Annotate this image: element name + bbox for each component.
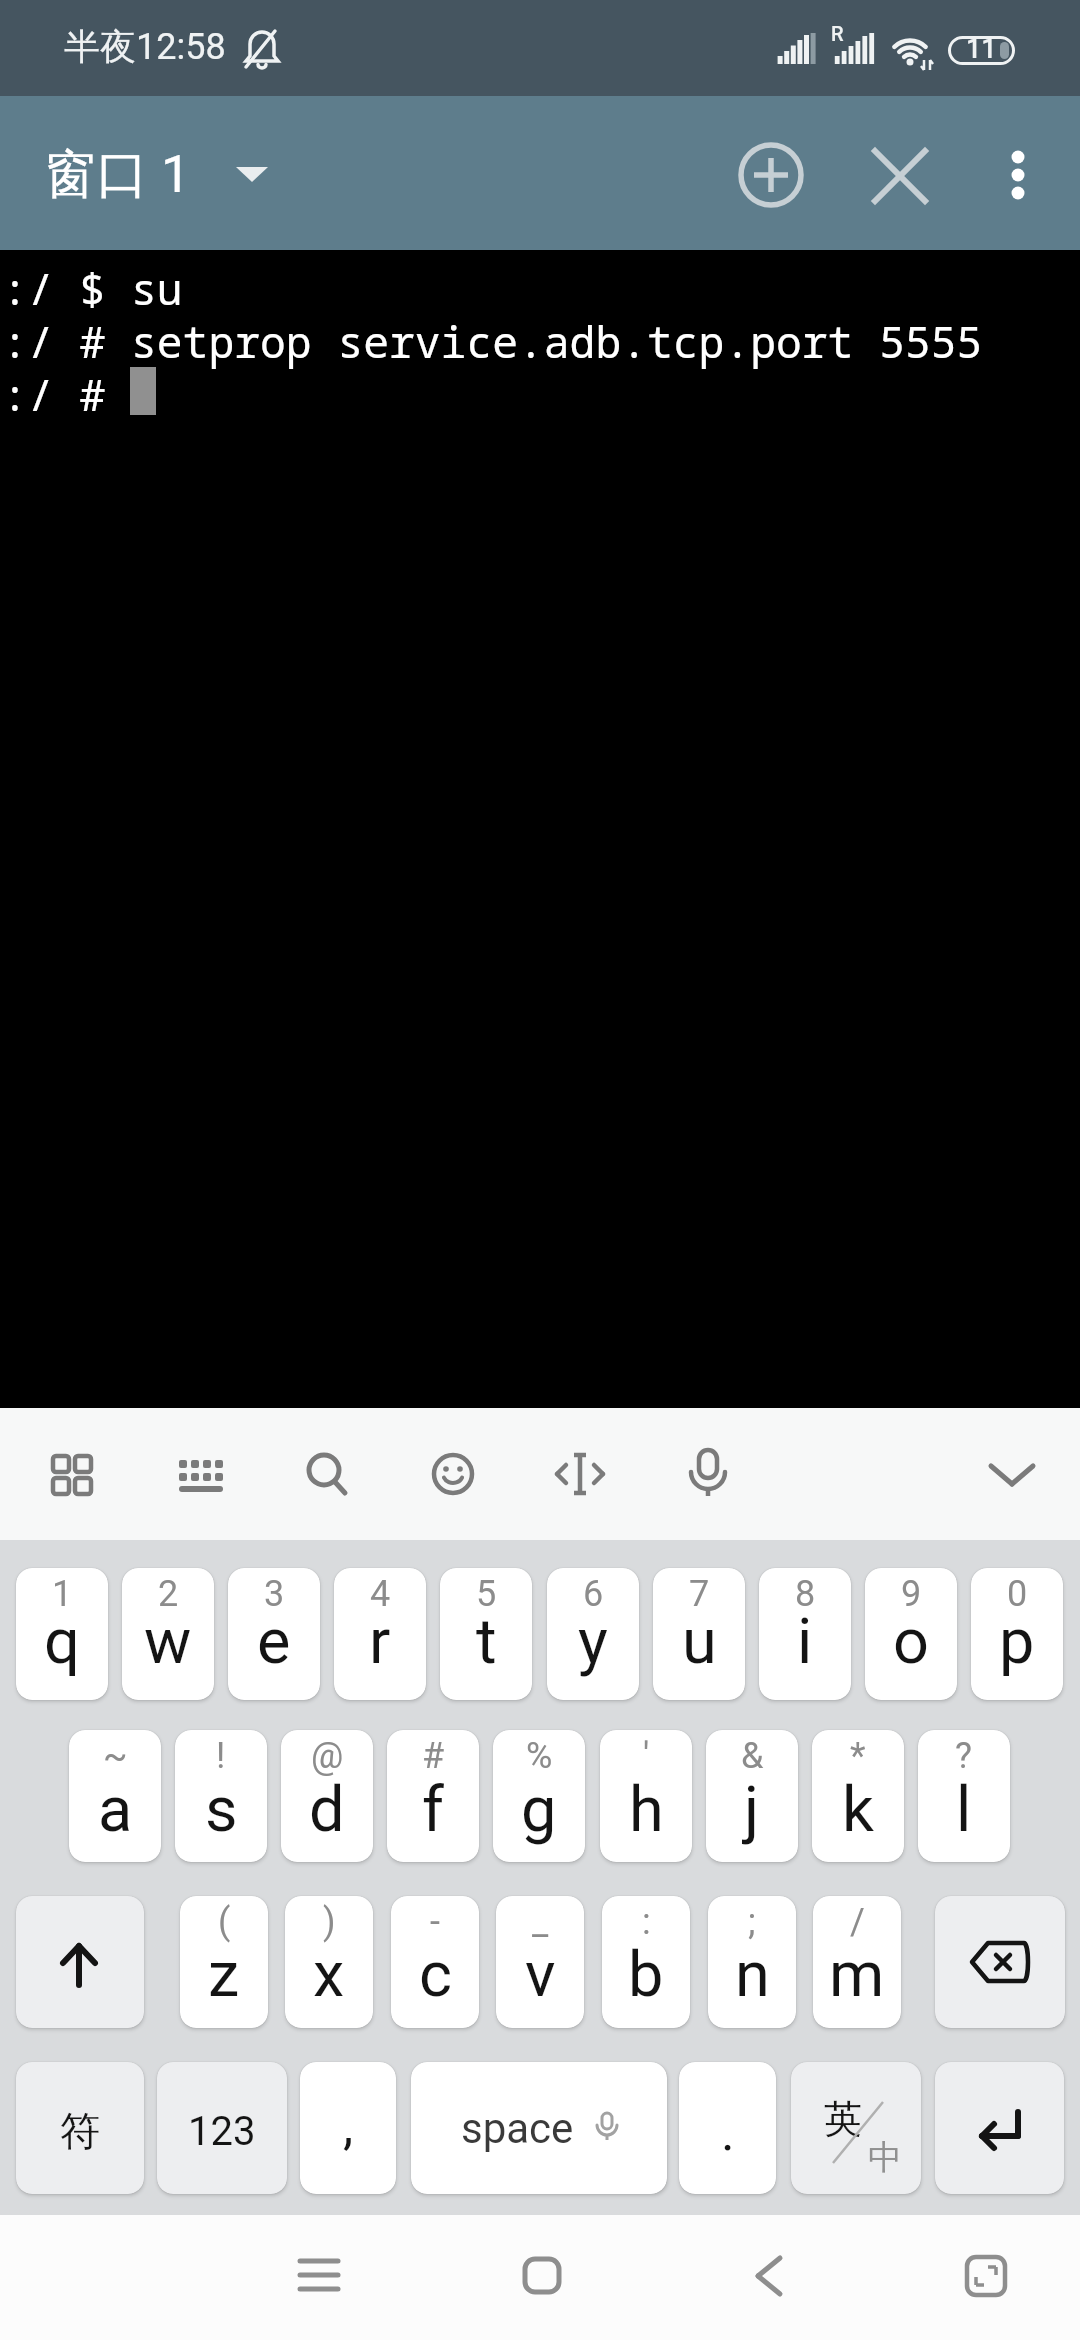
staticText: 半夜12:58 <box>64 24 226 69</box>
staticText: t <box>476 1605 497 1679</box>
staticText: a <box>98 1773 133 1847</box>
button[interactable]: @ <box>281 1730 373 1862</box>
button[interactable]: ! <box>175 1730 267 1862</box>
staticText: g <box>521 1773 557 1847</box>
staticText: ) <box>323 1901 336 1943</box>
button[interactable] <box>956 2245 1016 2305</box>
staticText: o <box>893 1605 929 1679</box>
staticText: d <box>309 1773 345 1847</box>
button[interactable]: , <box>300 2062 396 2194</box>
button[interactable]: 英 <box>791 2062 921 2194</box>
staticText: b <box>628 1938 664 2012</box>
button[interactable] <box>732 136 810 214</box>
staticText: z <box>208 1938 240 2012</box>
button[interactable] <box>984 1446 1040 1502</box>
button[interactable]: 123 <box>157 2062 287 2194</box>
staticText: n <box>735 1938 770 2012</box>
staticText: q <box>44 1605 80 1679</box>
button[interactable]: ; <box>708 1896 796 2028</box>
button[interactable] <box>552 1446 608 1502</box>
staticText: i <box>797 1605 813 1679</box>
button[interactable]: 符 <box>16 2062 144 2194</box>
staticText: y <box>578 1605 608 1679</box>
button[interactable]: 6 <box>547 1568 639 1700</box>
staticText: v <box>525 1938 556 2012</box>
staticText: k <box>842 1773 874 1847</box>
staticText: ~ <box>103 1735 128 1777</box>
button[interactable]: 2 <box>122 1568 214 1700</box>
button[interactable]: space <box>411 2062 667 2194</box>
button[interactable]: : <box>602 1896 690 2028</box>
button[interactable] <box>512 2245 572 2305</box>
button[interactable] <box>739 2245 799 2305</box>
button[interactable]: ) <box>285 1896 373 2028</box>
button[interactable] <box>44 1446 100 1502</box>
button[interactable]: 1 <box>16 1568 108 1700</box>
button[interactable] <box>289 2245 349 2305</box>
staticText: # <box>422 1735 445 1777</box>
staticText: ; <box>748 1901 756 1943</box>
button[interactable]: % <box>493 1730 585 1862</box>
button[interactable] <box>425 1446 481 1502</box>
staticText: 6 <box>583 1573 604 1615</box>
button[interactable]: ( <box>180 1896 268 2028</box>
staticText: r <box>369 1605 391 1679</box>
staticText: space <box>461 2104 574 2153</box>
button[interactable]: 7 <box>653 1568 745 1700</box>
button[interactable]: _ <box>496 1896 584 2028</box>
staticText: 中 <box>868 2136 902 2179</box>
staticText: ? <box>955 1735 973 1777</box>
staticText: 7 <box>689 1573 710 1615</box>
staticText: 3 <box>264 1573 285 1615</box>
staticText: l <box>956 1773 972 1847</box>
button[interactable] <box>935 1896 1065 2028</box>
staticText: _ <box>532 1901 549 1943</box>
staticText: 11 <box>966 33 997 65</box>
button[interactable]: 4 <box>334 1568 426 1700</box>
staticText: 2 <box>158 1573 179 1615</box>
button[interactable]: 窗口 1 <box>44 142 191 208</box>
button[interactable] <box>299 1446 355 1502</box>
staticText: u <box>682 1605 717 1679</box>
staticText: p <box>999 1605 1035 1679</box>
button[interactable] <box>994 146 1042 208</box>
staticText: 123 <box>188 2108 256 2155</box>
staticText: / <box>850 1901 865 1943</box>
button[interactable]: 3 <box>228 1568 320 1700</box>
button[interactable] <box>935 2062 1064 2194</box>
staticText: 0 <box>1007 1573 1028 1615</box>
button[interactable] <box>16 1896 144 2028</box>
staticText: - <box>430 1901 440 1943</box>
button[interactable]: 0 <box>971 1568 1063 1700</box>
staticText: 1 <box>52 1573 73 1615</box>
staticText: x <box>313 1938 345 2012</box>
button[interactable] <box>680 1446 736 1502</box>
button[interactable]: ' <box>600 1730 692 1862</box>
staticText: % <box>526 1735 553 1777</box>
staticText: 8 <box>795 1573 816 1615</box>
staticText: & <box>741 1735 764 1777</box>
staticText: f <box>422 1773 444 1847</box>
button[interactable] <box>872 148 928 204</box>
button[interactable]: 5 <box>440 1568 532 1700</box>
staticText: 符 <box>60 2106 100 2156</box>
button[interactable]: - <box>391 1896 479 2028</box>
staticText: @ <box>311 1735 344 1777</box>
staticText: w <box>144 1605 192 1679</box>
staticText: ( <box>218 1901 231 1943</box>
staticText: c <box>419 1938 452 2012</box>
button[interactable]: . <box>679 2062 776 2194</box>
button[interactable]: 9 <box>865 1568 957 1700</box>
staticText: ' <box>643 1735 650 1777</box>
button[interactable]: ~ <box>69 1730 161 1862</box>
staticText: * <box>850 1735 866 1777</box>
staticText: s <box>205 1773 238 1847</box>
staticText: 5 <box>476 1573 497 1615</box>
button[interactable]: # <box>387 1730 479 1862</box>
button[interactable]: 8 <box>759 1568 851 1700</box>
button[interactable]: / <box>813 1896 901 2028</box>
button[interactable] <box>172 1446 228 1502</box>
button[interactable]: & <box>706 1730 798 1862</box>
button[interactable]: ? <box>918 1730 1010 1862</box>
button[interactable]: * <box>812 1730 904 1862</box>
